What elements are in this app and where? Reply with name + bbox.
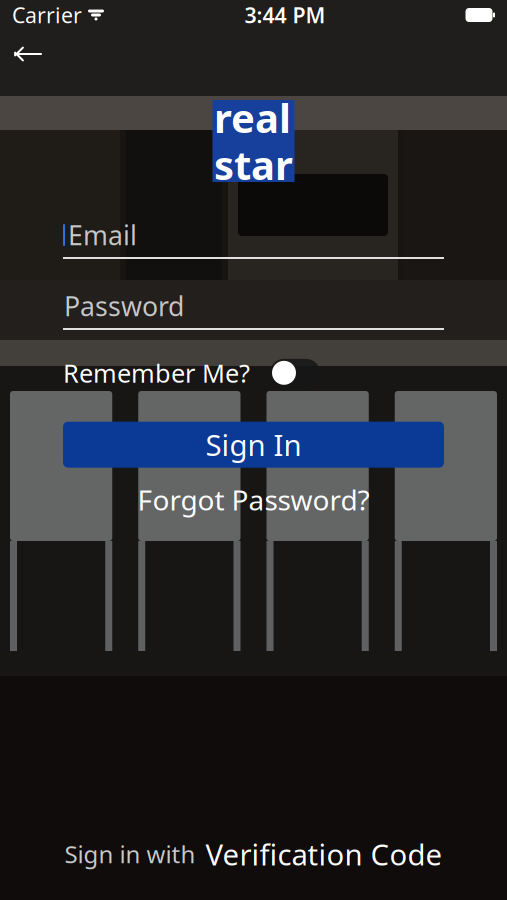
button[interactable]: Forgot Password? [63, 480, 444, 520]
staticText: Carrier [12, 1, 82, 29]
staticText: 3:44 PM [244, 1, 325, 29]
staticText: Email [68, 217, 137, 253]
staticText: star [214, 138, 293, 191]
staticText: Remember Me? [63, 356, 250, 390]
staticText: real [214, 91, 291, 144]
button[interactable]: Back [0, 32, 56, 76]
button[interactable]: Remember Me [270, 359, 320, 387]
button[interactable]: Sign in with [0, 830, 507, 878]
staticText: Forgot Password? [137, 481, 369, 518]
staticText: Verification Code [205, 834, 442, 873]
staticText: Password [64, 288, 184, 324]
button[interactable]: Sign In [63, 422, 444, 468]
staticText: Sign In [205, 425, 301, 464]
staticText: Sign in with [64, 838, 195, 870]
